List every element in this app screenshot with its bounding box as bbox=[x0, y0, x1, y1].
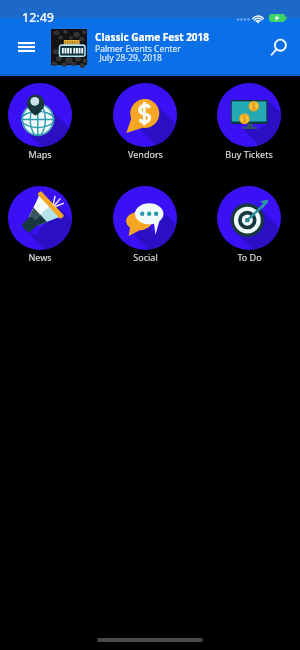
staticText: Palmer Events Center bbox=[95, 43, 181, 55]
button[interactable]: Social bbox=[113, 186, 177, 263]
staticText: 12:49 bbox=[22, 9, 55, 26]
button[interactable]: Buy Tickets bbox=[217, 83, 281, 160]
staticText: Maps bbox=[28, 148, 52, 160]
staticText: News bbox=[28, 251, 52, 263]
button[interactable]: Maps bbox=[8, 83, 72, 160]
staticText: To Do bbox=[237, 251, 262, 263]
staticText: Vendors bbox=[128, 148, 163, 160]
button[interactable]: Vendors bbox=[113, 83, 177, 160]
button[interactable]: To Do bbox=[217, 186, 281, 263]
staticText: Buy Tickets bbox=[225, 148, 273, 160]
button[interactable]: Search bbox=[256, 25, 300, 69]
button[interactable]: Open navigation menu bbox=[10, 31, 42, 63]
staticText: Social bbox=[133, 251, 158, 263]
button[interactable]: News bbox=[8, 186, 72, 263]
staticText: Classic Game Fest 2018 bbox=[95, 30, 210, 44]
staticText: July 28-29, 2018 bbox=[95, 52, 162, 64]
